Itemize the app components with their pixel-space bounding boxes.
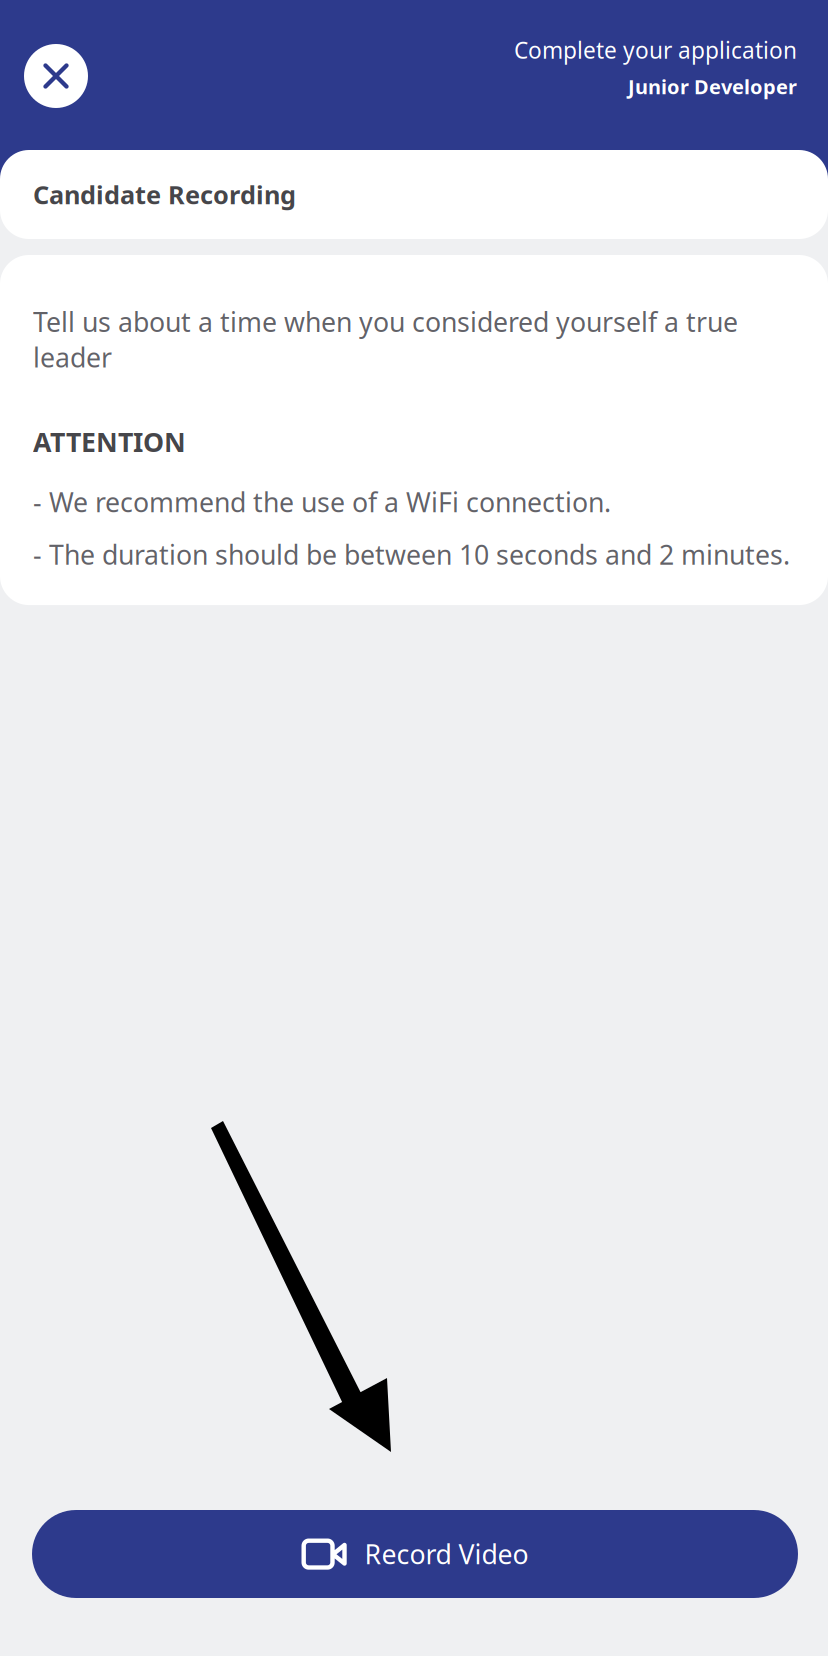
staticText: - We recommend the use of a WiFi connect… bbox=[33, 484, 611, 520]
staticText: Complete your application bbox=[514, 35, 797, 65]
staticText: ATTENTION bbox=[33, 424, 186, 459]
staticText: - The duration should be between 10 seco… bbox=[33, 537, 790, 572]
button[interactable]: Close bbox=[24, 44, 88, 108]
staticText: Tell us about a time when you considered… bbox=[33, 304, 738, 375]
button[interactable]: Record Video bbox=[32, 1510, 798, 1598]
staticText: Record Video bbox=[364, 1536, 528, 1572]
staticText: Junior Developer bbox=[628, 73, 797, 100]
staticText: Candidate Recording bbox=[33, 178, 296, 211]
